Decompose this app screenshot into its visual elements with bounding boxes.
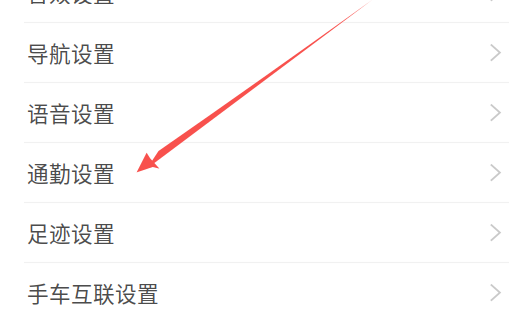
button[interactable]: 语音设置 bbox=[0, 83, 509, 143]
staticText: 音效设置 bbox=[27, 0, 115, 8]
button[interactable]: 音效设置 bbox=[0, 0, 509, 23]
button[interactable]: 足迹设置 bbox=[0, 203, 509, 263]
staticText: 导航设置 bbox=[27, 37, 115, 68]
button[interactable]: 手车互联设置 bbox=[0, 263, 509, 314]
staticText: 足迹设置 bbox=[27, 217, 115, 248]
staticText: 通勤设置 bbox=[27, 157, 115, 188]
staticText: 语音设置 bbox=[27, 97, 115, 128]
button[interactable]: 通勤设置 bbox=[0, 143, 509, 203]
staticText: 手车互联设置 bbox=[27, 277, 159, 308]
button[interactable]: 导航设置 bbox=[0, 23, 509, 83]
